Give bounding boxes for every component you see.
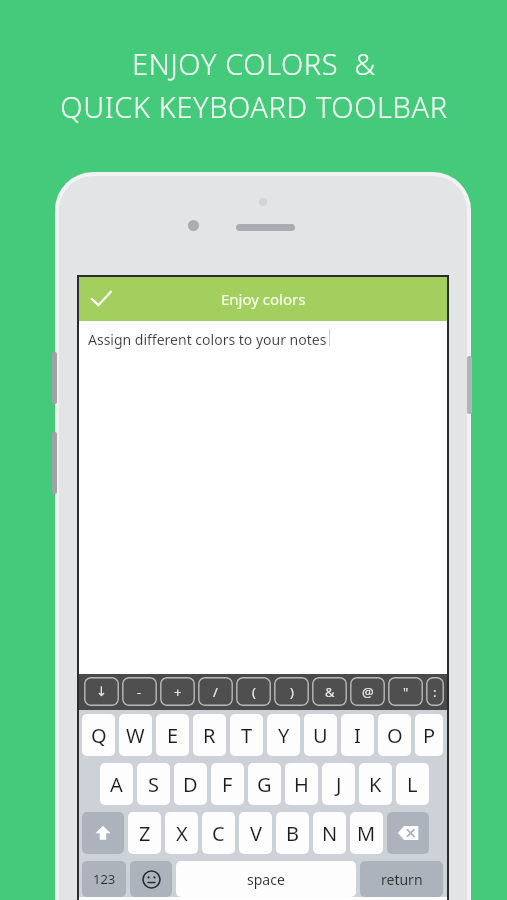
button[interactable]: - (122, 677, 157, 706)
button[interactable]: G (248, 763, 281, 805)
button[interactable]: : (426, 677, 444, 706)
staticText: / (213, 683, 218, 701)
button[interactable]: W (119, 714, 152, 756)
button[interactable]: U (304, 714, 337, 756)
staticText: V (250, 820, 262, 847)
button[interactable]: / (198, 677, 233, 706)
staticText: ) (290, 683, 294, 701)
staticText: W (126, 722, 145, 749)
button[interactable]: Backspace (387, 812, 429, 854)
button[interactable]: R (193, 714, 226, 756)
staticText: C (212, 820, 225, 847)
staticText: M (357, 820, 376, 847)
button[interactable]: 123 (82, 861, 126, 897)
staticText: 123 (93, 870, 116, 888)
staticText: : (433, 683, 437, 701)
staticText: QUICK KEYBOARD TOOLBAR (60, 87, 448, 126)
staticText: H (294, 771, 309, 798)
staticText: " (403, 683, 409, 701)
button[interactable]: Q (82, 714, 115, 756)
button[interactable]: E (156, 714, 189, 756)
button[interactable]: @ (350, 677, 385, 706)
button[interactable]: O (378, 714, 411, 756)
button[interactable]: Shift (82, 812, 124, 854)
staticText: K (369, 771, 382, 798)
staticText: Assign different colors to your notes (88, 330, 327, 349)
button[interactable]: & (312, 677, 347, 706)
staticText: + (174, 683, 182, 701)
staticText: ( (252, 683, 256, 701)
button[interactable]: S (137, 763, 170, 805)
button[interactable]: Y (267, 714, 300, 756)
staticText: S (148, 771, 159, 798)
staticText: P (423, 722, 436, 749)
staticText: L (407, 771, 418, 798)
staticText: space (247, 870, 285, 889)
button[interactable]: " (388, 677, 423, 706)
button[interactable]: V (239, 812, 272, 854)
staticText: E (167, 722, 179, 749)
staticText: return (381, 870, 423, 889)
button[interactable]: X (165, 812, 198, 854)
staticText: U (313, 722, 328, 749)
staticText: N (322, 820, 338, 847)
staticText: T (241, 722, 253, 749)
staticText: - (137, 683, 142, 701)
button[interactable]: L (396, 763, 429, 805)
button[interactable]: ( (236, 677, 271, 706)
button[interactable]: N (313, 812, 346, 854)
staticText: I (354, 722, 361, 749)
button[interactable]: + (160, 677, 195, 706)
staticText: @ (362, 683, 374, 701)
staticText: A (110, 771, 123, 798)
button[interactable]: space (176, 861, 356, 897)
staticText: X (176, 820, 188, 847)
staticText: G (257, 771, 272, 798)
button[interactable]: D (174, 763, 207, 805)
button[interactable]: J (322, 763, 355, 805)
button[interactable]: Z (128, 812, 161, 854)
staticText: R (203, 722, 216, 749)
staticText: F (222, 771, 233, 798)
staticText: Q (91, 722, 107, 749)
button[interactable]: A (100, 763, 133, 805)
staticText: ENJOY COLORS & (132, 44, 376, 83)
button[interactable]: return (360, 861, 443, 897)
staticText: B (286, 820, 299, 847)
button[interactable]: B (276, 812, 309, 854)
button[interactable]: P (415, 714, 443, 756)
button[interactable]: T (230, 714, 263, 756)
staticText: O (387, 722, 403, 749)
button[interactable]: H (285, 763, 318, 805)
staticText: D (183, 771, 198, 798)
button[interactable]: M (350, 812, 383, 854)
button[interactable]: K (359, 763, 392, 805)
button[interactable]: I (341, 714, 374, 756)
button[interactable]: Done (79, 277, 123, 321)
button[interactable]: F (211, 763, 244, 805)
staticText: Z (139, 820, 151, 847)
staticText: Y (278, 722, 290, 749)
button[interactable]: ↓ (84, 677, 119, 706)
button[interactable]: C (202, 812, 235, 854)
staticText: & (325, 683, 335, 701)
button[interactable]: Emoji (130, 861, 172, 897)
staticText: J (336, 771, 342, 798)
staticText: Enjoy colors (221, 289, 306, 309)
button[interactable]: ) (274, 677, 309, 706)
staticText: ↓ (96, 684, 107, 699)
